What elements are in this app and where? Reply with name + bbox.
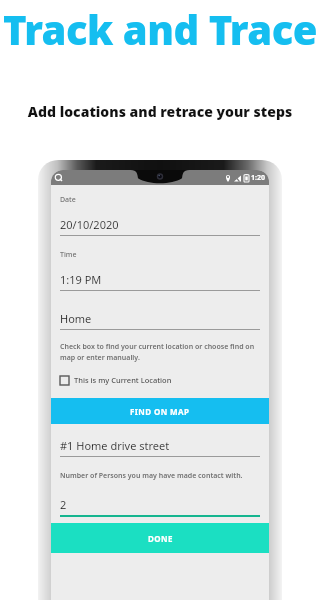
staticText: Add locations and retrace your steps xyxy=(0,102,320,121)
staticText: FIND ON MAP xyxy=(130,406,190,417)
button[interactable]: Home xyxy=(51,311,269,326)
staticText: Home xyxy=(60,311,92,326)
staticText: #1 Home drive street xyxy=(60,438,170,453)
button[interactable]: This is my Current Location xyxy=(51,373,269,387)
button[interactable]: FIND ON MAP xyxy=(51,398,269,424)
staticText: This is my Current Location xyxy=(74,375,172,385)
staticText: Check box to find your current location … xyxy=(60,342,260,362)
staticText: 2 xyxy=(60,497,67,512)
staticText: 1:20 xyxy=(251,173,265,183)
staticText: Time xyxy=(60,250,77,260)
button[interactable]: DONE xyxy=(51,523,269,553)
staticText: DONE xyxy=(148,533,173,544)
staticText: Track and Trace xyxy=(0,2,320,56)
staticText: 1:19 PM xyxy=(60,272,102,287)
button[interactable]: #1 Home drive street xyxy=(51,438,269,453)
button[interactable]: 20/10/2020 xyxy=(51,217,269,232)
button[interactable]: 1:19 PM xyxy=(51,272,269,287)
staticText: 20/10/2020 xyxy=(60,217,119,232)
staticText: Number of Persons you may have made cont… xyxy=(60,471,243,481)
button[interactable]: 2 xyxy=(51,497,269,512)
staticText: Date xyxy=(60,195,76,205)
